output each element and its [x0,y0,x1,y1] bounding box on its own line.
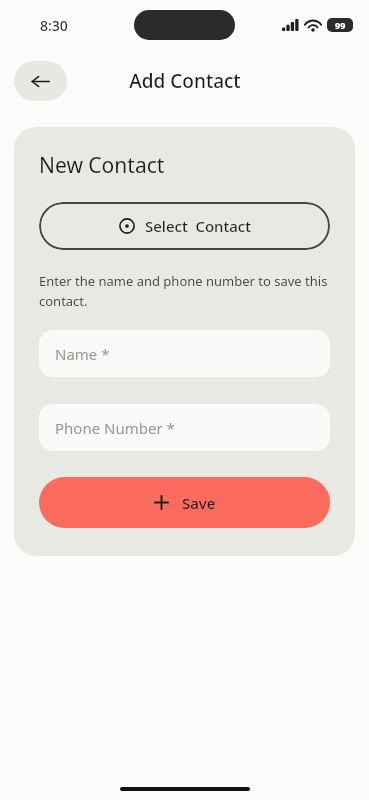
staticText: Enter the name and phone number to save … [39,272,330,310]
staticText: New Contact [39,151,165,180]
staticText: Select Contact [145,216,251,236]
staticText: Name * [55,344,110,364]
staticText: Save [182,493,216,513]
button[interactable]: Phone Number * [39,404,330,451]
button[interactable]: Back [14,61,67,101]
staticText: 8:30 [40,16,68,35]
staticText: Phone Number * [55,418,175,438]
button[interactable]: Select Contact [39,202,330,250]
staticText: 99 [335,19,346,31]
staticText: Add Contact [129,68,241,94]
button[interactable]: Save [39,477,330,528]
button[interactable]: Name * [39,330,330,377]
